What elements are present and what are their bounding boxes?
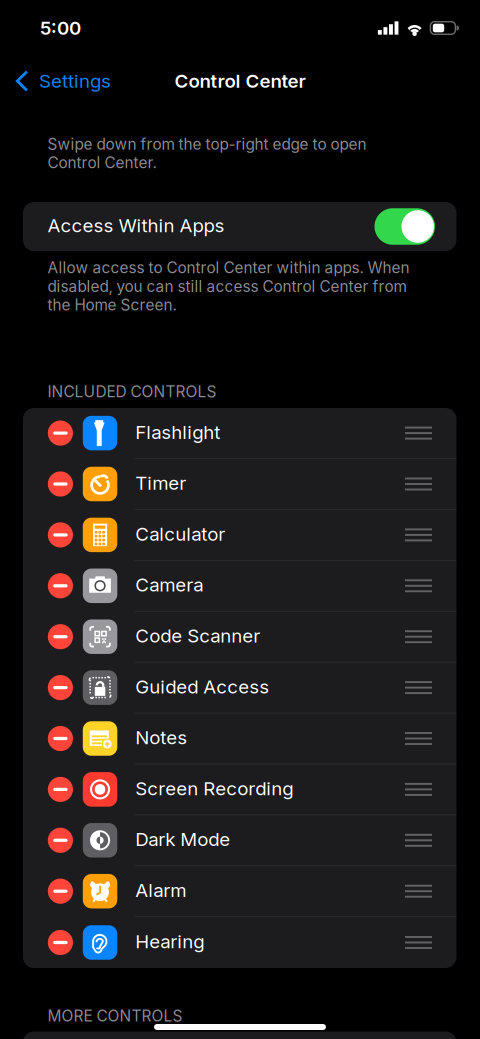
button[interactable]: Camera xyxy=(23,561,456,611)
staticText: Notes xyxy=(135,726,187,749)
staticText: Alarm xyxy=(135,879,186,901)
button[interactable]: Dark Mode xyxy=(23,815,456,865)
staticText: Dark Mode xyxy=(135,828,230,851)
staticText: Control Center xyxy=(174,70,305,92)
button[interactable]: Hearing xyxy=(23,917,456,968)
button[interactable]: Guided Access xyxy=(23,663,456,713)
button[interactable]: Remove xyxy=(48,777,73,802)
staticText: Calculator xyxy=(135,523,225,545)
button[interactable]: Remove xyxy=(48,726,73,751)
staticText: Code Scanner xyxy=(135,624,260,647)
button[interactable]: Remove xyxy=(48,420,73,446)
staticText: Guided Access xyxy=(135,675,269,698)
staticText: Screen Recording xyxy=(135,777,293,800)
staticText: MORE CONTROLS xyxy=(47,1006,182,1025)
button[interactable]: Code Scanner xyxy=(23,612,456,662)
staticText: Access Within Apps xyxy=(47,214,224,237)
staticText: Timer xyxy=(135,472,186,494)
button[interactable]: Remove xyxy=(48,624,73,649)
staticText: INCLUDED CONTROLS xyxy=(47,382,216,401)
button[interactable]: Notes xyxy=(23,713,456,764)
staticText: Swipe down from the top-right edge to op… xyxy=(47,135,366,172)
button[interactable]: Remove xyxy=(48,879,73,904)
staticText: Flashlight xyxy=(135,421,220,443)
button[interactable]: Timer xyxy=(23,459,456,509)
button[interactable]: Screen Recording xyxy=(23,764,456,814)
staticText: Allow access to Control Center within ap… xyxy=(47,258,409,314)
button[interactable]: Remove xyxy=(48,471,73,497)
button[interactable]: Remove xyxy=(48,573,73,598)
staticText: Settings xyxy=(39,70,111,92)
staticText: 5:00 xyxy=(40,17,81,39)
button[interactable]: Flashlight xyxy=(23,408,456,458)
button[interactable]: Access Within Apps toggle xyxy=(374,208,435,245)
staticText: Camera xyxy=(135,573,203,596)
button[interactable]: Remove xyxy=(48,930,73,955)
staticText: Hearing xyxy=(135,930,204,953)
button[interactable]: Settings xyxy=(0,56,121,106)
button[interactable]: Remove xyxy=(48,675,73,700)
button[interactable]: Calculator xyxy=(23,510,456,560)
button[interactable]: Remove xyxy=(48,522,73,547)
button[interactable]: Alarm xyxy=(23,866,456,916)
button[interactable]: Remove xyxy=(48,828,73,853)
